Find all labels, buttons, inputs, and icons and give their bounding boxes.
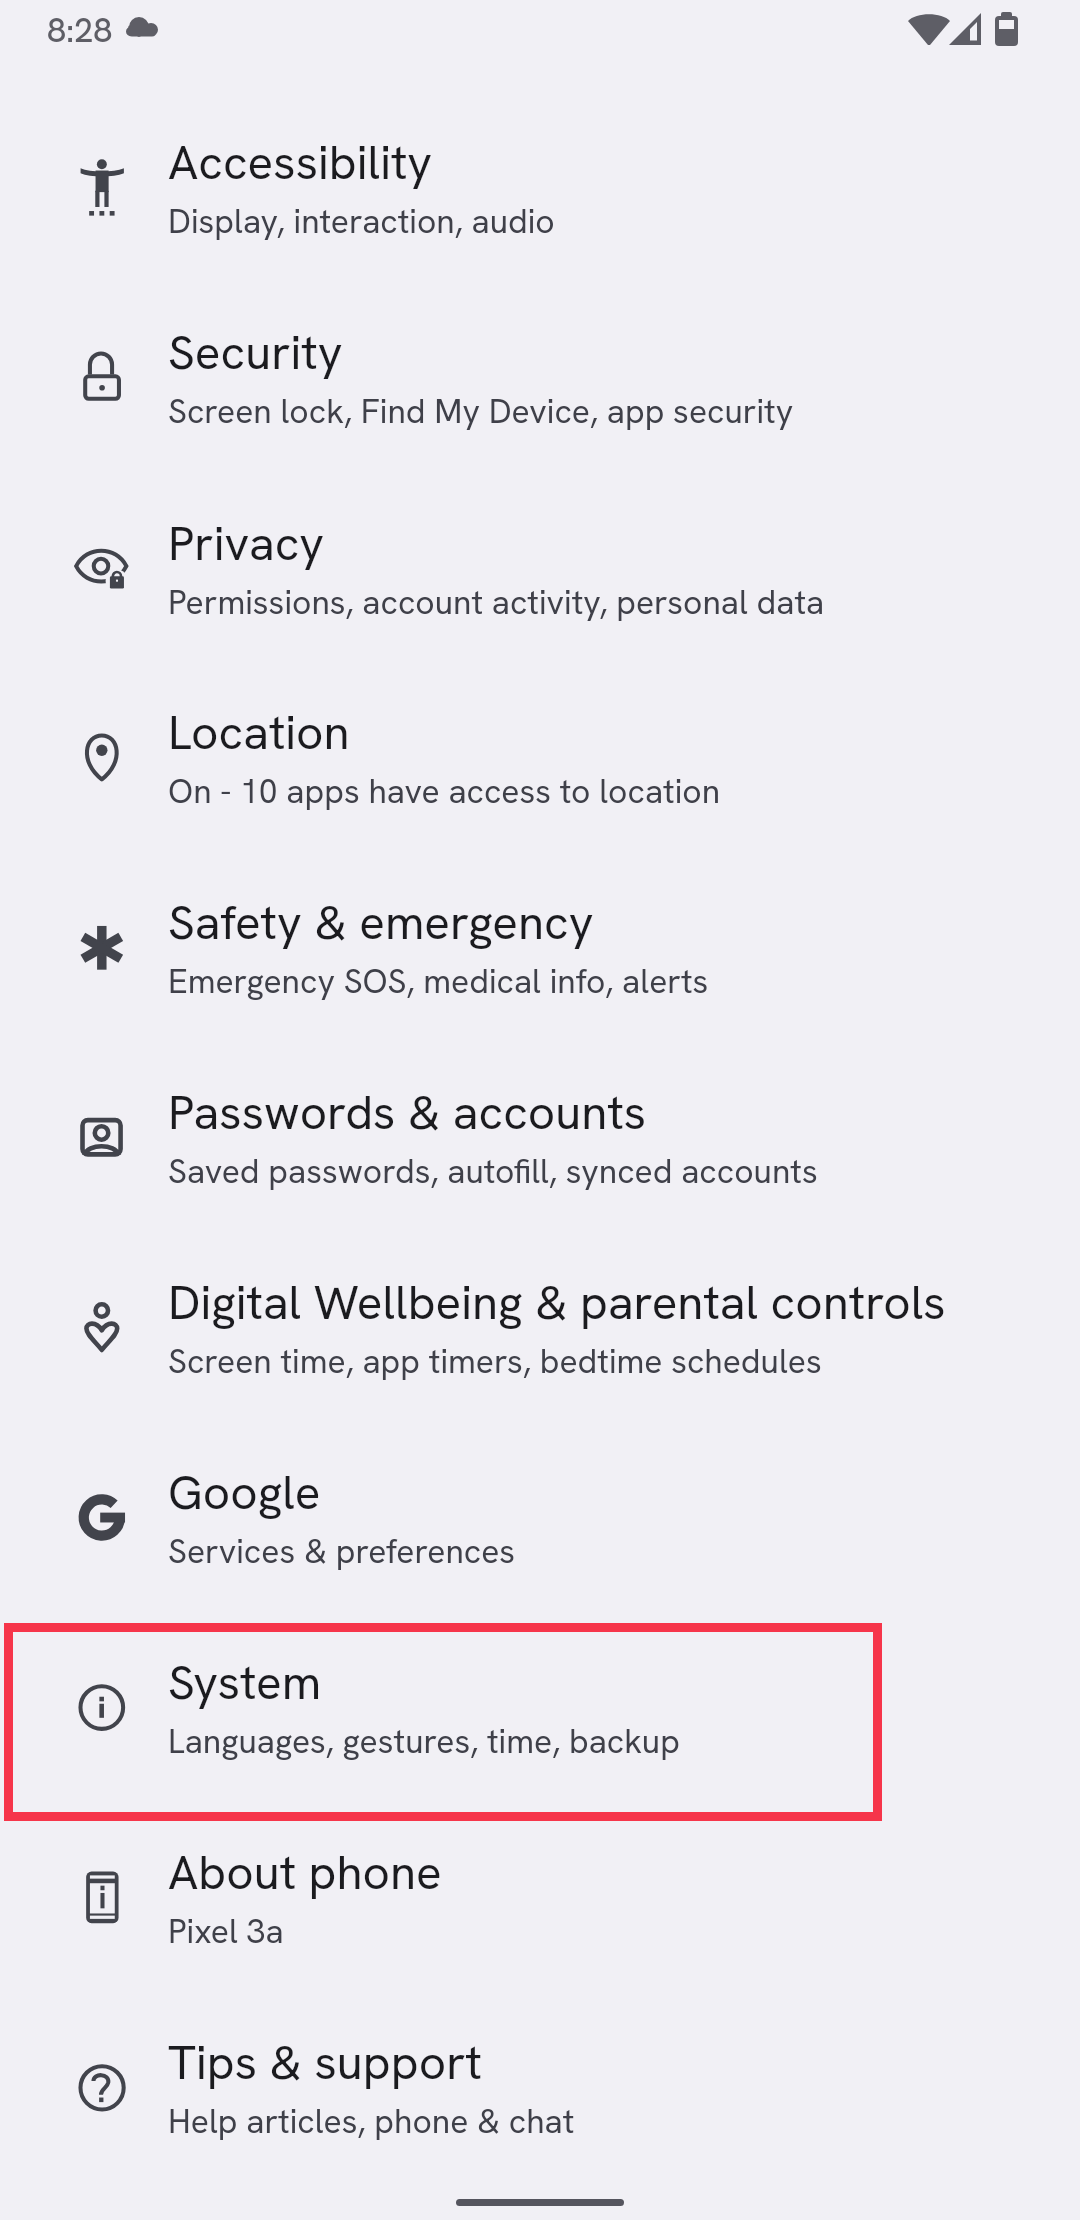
button[interactable]: Location [0, 662, 1080, 852]
other: Passwords and accounts [74, 1110, 128, 1164]
button[interactable]: About phone [0, 1802, 1080, 1992]
other: Accessibility [74, 160, 128, 214]
staticText: Emergency SOS, medical info, alerts [168, 959, 709, 1003]
staticText: 8:28 [47, 8, 113, 52]
staticText: Pixel 3a [168, 1909, 284, 1953]
staticText: Permissions, account activity, personal … [168, 580, 825, 624]
button[interactable]: Google [0, 1422, 1080, 1612]
staticText: On - 10 apps have access to location [168, 769, 721, 813]
button[interactable]: Safety and emergency [0, 852, 1080, 1042]
button[interactable]: Privacy [0, 473, 1080, 663]
staticText: Tips & support [168, 2031, 482, 2093]
button[interactable]: Accessibility [0, 92, 1080, 282]
staticText: Help articles, phone & chat [168, 2099, 575, 2143]
button[interactable]: Passwords and accounts [0, 1042, 1080, 1232]
staticText: Passwords & accounts [168, 1081, 647, 1143]
other: Privacy [74, 541, 128, 595]
staticText: Accessibility [168, 131, 433, 193]
other: Location [74, 730, 128, 784]
staticText: About phone [168, 1841, 442, 1903]
other: System [74, 1680, 128, 1734]
button[interactable]: Security [0, 282, 1080, 472]
other: Tips and support [74, 2060, 128, 2114]
staticText: Screen time, app timers, bedtime schedul… [168, 1339, 822, 1383]
other: Safety and emergency [74, 920, 128, 974]
staticText: Privacy [168, 512, 325, 574]
other: Digital Wellbeing [74, 1300, 128, 1354]
staticText: Display, interaction, audio [168, 199, 555, 243]
staticText: Digital Wellbeing & parental controls [168, 1271, 946, 1333]
button[interactable]: Tips and support [0, 1992, 1080, 2182]
staticText: System [168, 1651, 322, 1713]
other: About phone [74, 1870, 128, 1924]
staticText: Services & preferences [168, 1529, 516, 1573]
staticText: Safety & emergency [168, 891, 594, 953]
staticText: Security [168, 321, 343, 383]
other: Google [74, 1490, 128, 1544]
staticText: Saved passwords, autofill, synced accoun… [168, 1149, 818, 1193]
button[interactable]: Digital Wellbeing [0, 1232, 1080, 1422]
staticText: Screen lock, Find My Device, app securit… [168, 389, 794, 433]
staticText: Google [168, 1461, 321, 1523]
other: Security [74, 350, 128, 404]
staticText: Location [168, 701, 350, 763]
button[interactable]: System [0, 1612, 1080, 1802]
staticText: Languages, gestures, time, backup [168, 1719, 680, 1763]
